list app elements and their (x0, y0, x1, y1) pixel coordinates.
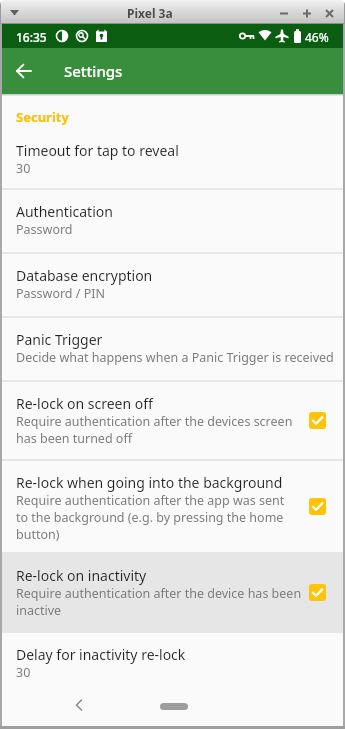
button[interactable] (275, 3, 293, 21)
button[interactable] (309, 584, 326, 601)
button[interactable]: Database encryption (2, 254, 343, 316)
button[interactable]: Re-lock when going into the background (2, 461, 343, 552)
button[interactable] (5, 4, 23, 22)
staticText: Delay for inactivity re-lock (16, 645, 186, 664)
staticText: Panic Trigger (16, 330, 103, 349)
staticText: Require authentication after the app was… (16, 492, 285, 509)
staticText: 46% (305, 29, 329, 45)
button[interactable]: Timeout for tap to reveal (2, 129, 343, 188)
button[interactable]: Re-lock on inactivity (2, 554, 343, 631)
button[interactable]: Authentication (2, 190, 343, 252)
button[interactable]: Panic Trigger (2, 318, 343, 380)
button[interactable]: Re-lock on screen off (2, 382, 343, 459)
button[interactable] (321, 3, 339, 21)
staticText: Pixel 3a (127, 5, 173, 21)
staticText: Re-lock on screen off (16, 394, 153, 413)
staticText: Security (16, 108, 69, 126)
staticText: Timeout for tap to reveal (16, 141, 179, 160)
staticText: Require authentication after the device … (16, 585, 302, 602)
staticText: Decide what happens when a Panic Trigger… (16, 349, 334, 366)
button[interactable] (309, 498, 326, 515)
button[interactable] (66, 695, 92, 721)
button[interactable] (309, 412, 326, 429)
staticText: Password / PIN (16, 285, 105, 302)
staticText: Re-lock when going into the background (16, 473, 283, 492)
staticText: has been turned off (16, 430, 133, 447)
staticText: Settings (64, 61, 123, 81)
staticText: 16:35 (16, 29, 47, 45)
staticText: button) (16, 526, 60, 543)
staticText: Password (16, 221, 73, 238)
button[interactable]: Delay for inactivity re-lock (2, 633, 343, 695)
staticText: 30 (16, 664, 31, 681)
staticText: Require authentication after the devices… (16, 413, 293, 430)
staticText: Database encryption (16, 266, 153, 285)
staticText: Re-lock on inactivity (16, 566, 147, 585)
button[interactable] (298, 3, 316, 21)
button[interactable] (10, 57, 38, 85)
staticText: inactive (16, 602, 62, 619)
staticText: 30 (16, 160, 31, 177)
staticText: Authentication (16, 202, 113, 221)
button[interactable] (152, 695, 196, 718)
staticText: to the background (e.g. by pressing the … (16, 509, 284, 526)
